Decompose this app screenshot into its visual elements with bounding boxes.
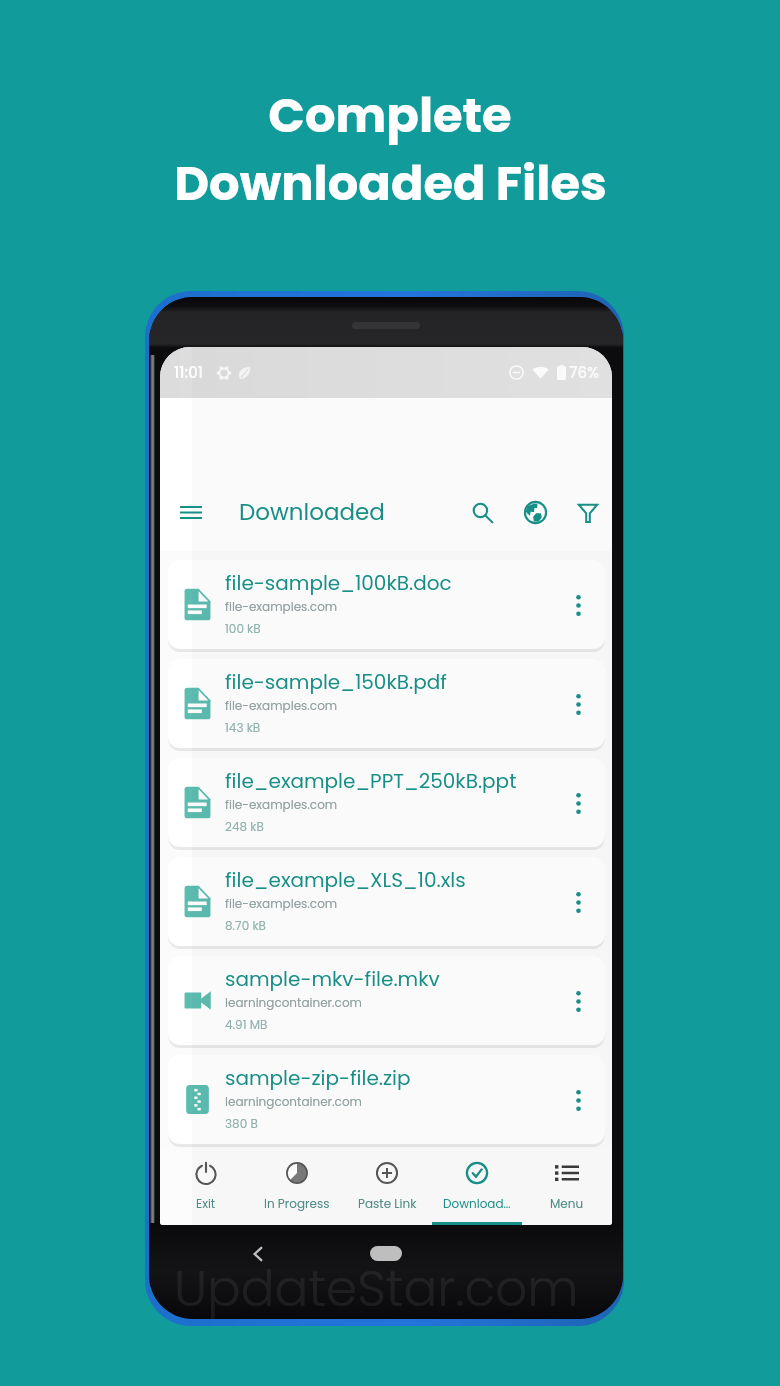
staticText: sample-mkv-file.mkv — [225, 965, 440, 993]
staticText: file-examples.com — [225, 895, 338, 912]
button[interactable]: Menu — [522, 1150, 612, 1225]
staticText: file-examples.com — [225, 598, 338, 615]
staticText: 76% — [569, 362, 599, 383]
staticText: Paste Link — [358, 1195, 417, 1212]
staticText: file_example_PPT_250kB.ppt — [225, 767, 517, 795]
button[interactable]: More options — [560, 587, 596, 623]
staticText: Downloaded Files — [174, 150, 607, 217]
button[interactable]: Navigation menu — [172, 493, 210, 531]
staticText: 248 kB — [225, 818, 264, 835]
staticText: 143 kB — [225, 719, 261, 736]
button[interactable]: More options — [560, 884, 596, 920]
staticText: Complete — [268, 82, 512, 149]
staticText: UpdateStar.com — [174, 1254, 579, 1319]
button[interactable]: Open browser — [515, 492, 555, 532]
button[interactable]: file-sample_100kB.doc — [168, 560, 605, 649]
button[interactable]: More options — [560, 983, 596, 1019]
staticText: Downloaded — [239, 496, 385, 528]
button[interactable]: file_example_XLS_10.xls — [168, 857, 605, 946]
button[interactable]: Search — [462, 492, 502, 532]
staticText: file-examples.com — [225, 697, 338, 714]
staticText: 4.91 MB — [225, 1016, 268, 1033]
button[interactable]: Paste Link — [342, 1150, 432, 1225]
staticText: 380 B — [225, 1115, 258, 1132]
button[interactable]: In Progress — [251, 1150, 342, 1225]
button[interactable]: More options — [560, 785, 596, 821]
staticText: file-examples.com — [225, 796, 338, 813]
button[interactable]: More options — [560, 686, 596, 722]
button[interactable]: Download… — [432, 1150, 522, 1225]
staticText: file-sample_100kB.doc — [225, 569, 452, 597]
button[interactable]: sample-mkv-file.mkv — [168, 956, 605, 1045]
button[interactable]: file_example_PPT_250kB.ppt — [168, 758, 605, 847]
button[interactable]: file-sample_150kB.pdf — [168, 659, 605, 748]
staticText: In Progress — [264, 1195, 330, 1212]
staticText: file-sample_150kB.pdf — [225, 668, 447, 696]
button[interactable]: Exit — [160, 1150, 251, 1225]
staticText: learningcontainer.com — [225, 994, 362, 1011]
staticText: Menu — [550, 1195, 584, 1212]
staticText: 100 kB — [225, 620, 261, 637]
staticText: Download… — [443, 1195, 511, 1212]
button[interactable]: Filter — [568, 492, 608, 532]
staticText: Exit — [196, 1195, 216, 1212]
staticText: sample-zip-file.zip — [225, 1064, 411, 1092]
button[interactable]: More options — [560, 1082, 596, 1118]
staticText: file_example_XLS_10.xls — [225, 866, 466, 894]
staticText: learningcontainer.com — [225, 1093, 362, 1110]
button[interactable]: sample-zip-file.zip — [168, 1055, 605, 1144]
staticText: 8.70 kB — [225, 917, 266, 934]
staticText: 11:01 — [174, 362, 204, 383]
